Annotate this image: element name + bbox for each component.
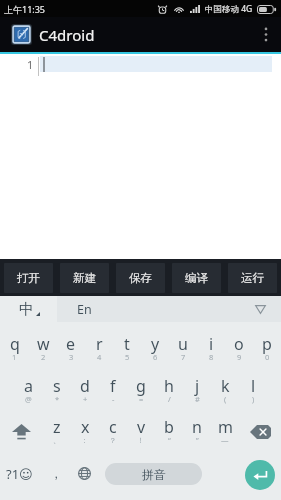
staticText: 新建	[73, 271, 96, 285]
button[interactable]: r	[85, 322, 113, 367]
button[interactable]: v	[127, 411, 155, 453]
staticText: /	[168, 394, 171, 404]
staticText: =	[139, 394, 144, 404]
button[interactable]: e	[57, 322, 85, 367]
button[interactable]: More options	[251, 17, 281, 52]
button[interactable]: g	[127, 367, 155, 411]
staticText: #	[195, 394, 200, 404]
button[interactable]: b	[155, 411, 183, 453]
staticText: e	[66, 333, 76, 355]
staticText: m	[218, 416, 233, 438]
staticText: s	[53, 375, 61, 397]
button[interactable]: Hide keyboard	[239, 296, 281, 322]
button[interactable]: 拼音	[105, 463, 202, 485]
button[interactable]: o	[225, 322, 253, 367]
staticText: q	[10, 333, 20, 355]
staticText: o	[234, 333, 244, 355]
button[interactable]: C4droid	[11, 24, 32, 45]
staticText: p	[262, 333, 272, 355]
staticText: 打开	[17, 271, 40, 285]
staticText: ?1☺	[6, 465, 33, 483]
staticText: 0	[265, 352, 270, 362]
staticText: ？	[109, 436, 117, 445]
staticText: 中	[19, 300, 34, 319]
staticText: 运行	[241, 271, 264, 285]
staticText: k	[221, 375, 230, 397]
button[interactable]: 保存	[116, 263, 165, 293]
staticText: En	[77, 301, 92, 318]
staticText: v	[137, 416, 146, 438]
staticText: j	[195, 375, 200, 397]
button[interactable]: s	[43, 367, 71, 411]
button[interactable]: 打开	[4, 263, 53, 293]
staticText: g	[136, 375, 146, 397]
button[interactable]: En	[57, 296, 281, 322]
staticText: )	[252, 394, 255, 404]
staticText: b	[164, 416, 174, 438]
staticText: d	[80, 375, 90, 397]
button[interactable]: n	[183, 411, 211, 453]
button[interactable]: y	[141, 322, 169, 367]
button[interactable]: p	[253, 322, 281, 367]
button[interactable]: f	[99, 367, 127, 411]
staticText: 编译	[185, 271, 208, 285]
button[interactable]: m	[211, 411, 239, 453]
staticText: n	[192, 416, 202, 438]
button[interactable]: 编译	[172, 263, 221, 293]
button[interactable]: q	[0, 322, 29, 367]
staticText: 1	[27, 57, 34, 72]
button[interactable]: Enter	[245, 460, 275, 490]
staticText: 4	[97, 352, 102, 362]
staticText: ：	[81, 436, 89, 445]
staticText: -	[112, 394, 115, 404]
button[interactable]: x	[71, 411, 99, 453]
staticText: x	[81, 416, 90, 438]
staticText: u	[178, 333, 188, 355]
button[interactable]: d	[71, 367, 99, 411]
staticText: 8	[209, 352, 214, 362]
staticText: 2	[41, 352, 46, 362]
button[interactable]: i	[197, 322, 225, 367]
staticText: @	[25, 394, 32, 404]
button[interactable]: 1	[0, 54, 281, 76]
button[interactable]: c	[99, 411, 127, 453]
staticText: —	[221, 435, 229, 445]
button[interactable]: 中	[0, 296, 57, 322]
staticText: f	[110, 375, 116, 397]
button[interactable]: 运行	[228, 263, 277, 293]
button[interactable]: ?1☺	[0, 450, 38, 497]
button[interactable]: t	[113, 322, 141, 367]
button[interactable]: ，	[40, 450, 72, 497]
staticText: 7	[181, 352, 186, 362]
button[interactable]: l	[239, 367, 267, 411]
staticText: z	[53, 416, 61, 438]
staticText: ！	[137, 436, 145, 445]
staticText: ”	[196, 435, 199, 445]
staticText: 3	[69, 352, 74, 362]
staticText: 拼音	[142, 467, 166, 482]
button[interactable]: a	[14, 367, 43, 411]
staticText: r	[96, 333, 103, 355]
staticText: C4droid	[39, 25, 95, 45]
button[interactable]: z	[42, 411, 71, 453]
button[interactable]: 新建	[60, 263, 109, 293]
staticText: +	[83, 394, 88, 404]
button[interactable]: Shift	[0, 411, 42, 453]
button[interactable]: h	[155, 367, 183, 411]
button[interactable]: w	[29, 322, 57, 367]
staticText: h	[164, 375, 174, 397]
staticText: t	[124, 333, 130, 355]
button[interactable]: Switch language	[70, 450, 98, 497]
button[interactable]: j	[183, 367, 211, 411]
button[interactable]: Backspace	[239, 411, 281, 453]
staticText: y	[151, 333, 160, 355]
staticText: 6	[153, 352, 158, 362]
staticText: 9	[237, 352, 242, 362]
staticText: 保存	[129, 271, 152, 285]
button[interactable]: k	[211, 367, 239, 411]
staticText: c	[109, 416, 117, 438]
button[interactable]: u	[169, 322, 197, 367]
staticText: *	[55, 394, 60, 404]
staticText: ，	[50, 466, 62, 481]
staticText: i	[209, 333, 214, 355]
